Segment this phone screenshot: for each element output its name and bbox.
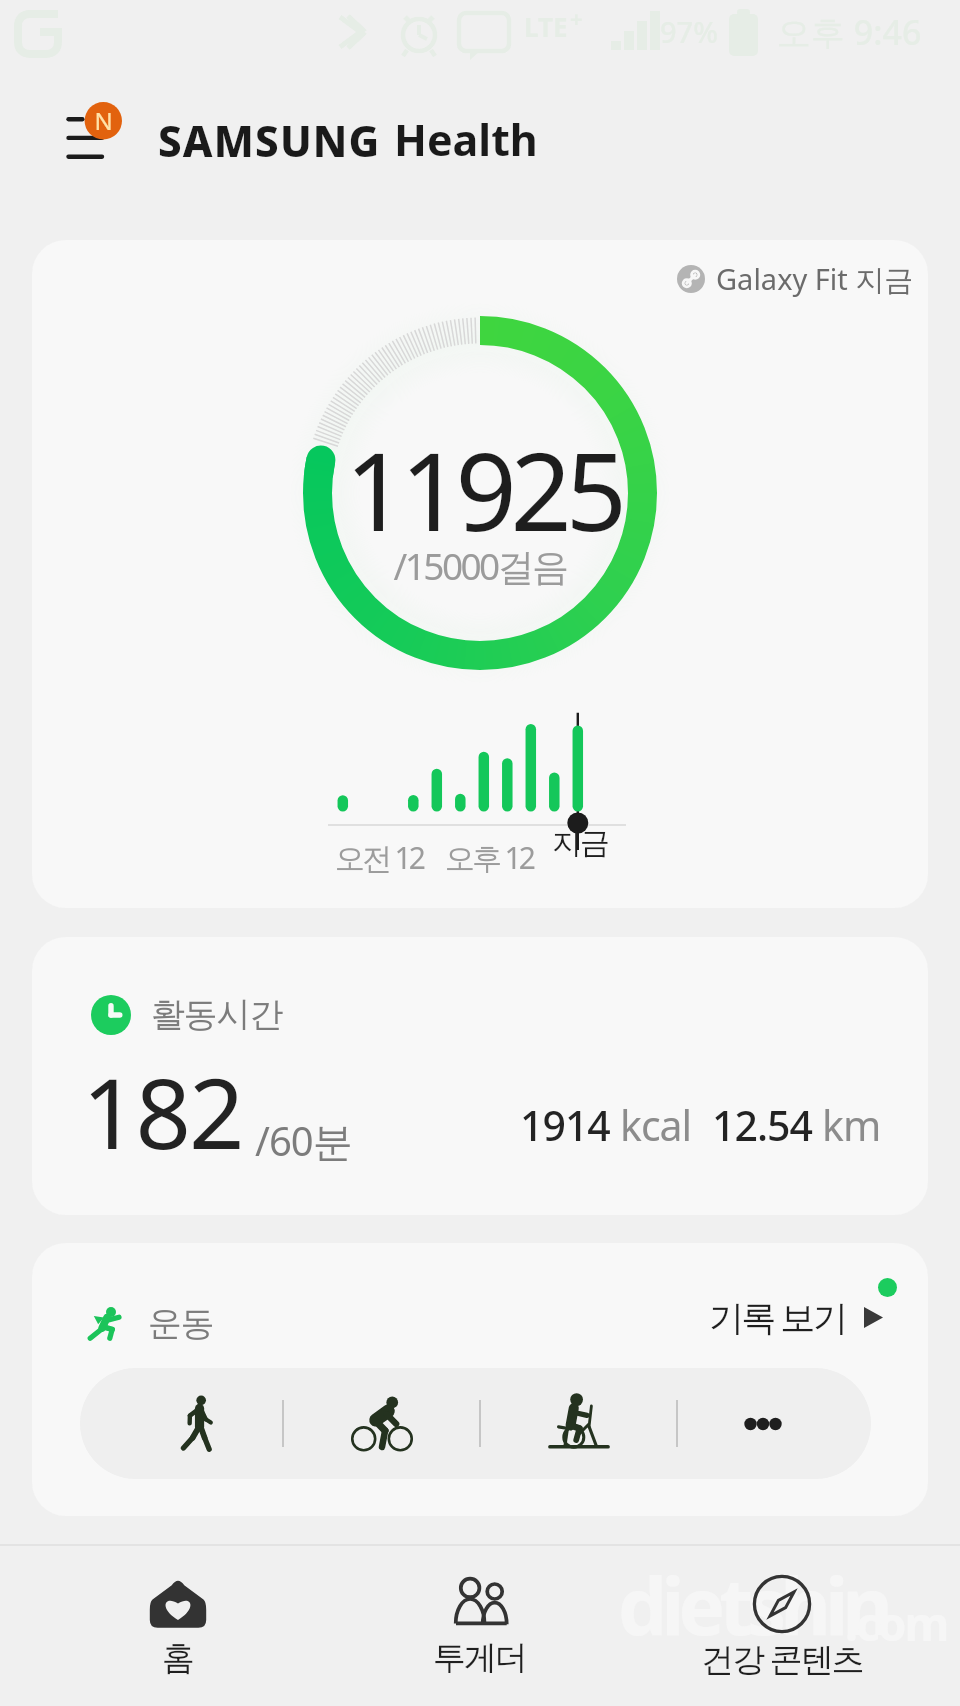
staticText: SAMSUNG <box>158 112 381 169</box>
button[interactable]: 건강 콘텐츠 <box>631 1547 933 1706</box>
staticText: 오후 9:46 <box>777 9 922 55</box>
button[interactable]: 활동시간 <box>32 937 928 1215</box>
staticText: 투게더 <box>434 1637 527 1679</box>
staticText: dietshin <box>618 1552 887 1658</box>
button[interactable]: 운동 <box>87 1302 214 1345</box>
staticText: Health <box>394 110 538 169</box>
staticText: /15000걸음 <box>280 540 680 591</box>
staticText: 운동 <box>148 1302 214 1345</box>
staticText: kcal <box>620 1097 692 1153</box>
staticText: + <box>570 3 583 33</box>
staticText: 182 <box>82 1045 243 1177</box>
staticText: 12.54 <box>712 1097 812 1153</box>
staticText: 97% <box>660 12 718 51</box>
button[interactable]: 투게더 <box>329 1547 631 1706</box>
button[interactable]: Cycling <box>283 1368 480 1479</box>
staticText: 건강 콘텐츠 <box>701 1636 863 1681</box>
button[interactable]: Menu <box>52 96 128 172</box>
staticText: 오전 12 <box>335 837 424 878</box>
staticText: LTE <box>524 9 568 44</box>
staticText: 기록 보기 <box>709 1293 846 1341</box>
staticText: N <box>89 104 118 138</box>
button[interactable]: Exercise bike <box>480 1368 677 1479</box>
button[interactable]: Galaxy Fit 지금 <box>32 240 928 908</box>
button[interactable]: 기록 보기 <box>709 1293 883 1341</box>
staticText: 활동시간 <box>151 993 283 1036</box>
staticText: 홈 <box>163 1637 194 1679</box>
staticText: .com <box>845 1592 948 1655</box>
staticText: km <box>822 1097 881 1153</box>
staticText: 지금 <box>553 824 609 862</box>
staticText: 1914 <box>520 1097 610 1153</box>
button[interactable]: More <box>677 1368 871 1479</box>
staticText: 11925 <box>280 417 686 563</box>
staticText: 오후 12 <box>445 837 534 878</box>
staticText: Galaxy Fit 지금 <box>716 259 914 299</box>
button[interactable]: Walking <box>80 1368 283 1479</box>
staticText: /60분 <box>255 1113 352 1168</box>
button[interactable]: 홈 <box>27 1547 329 1706</box>
